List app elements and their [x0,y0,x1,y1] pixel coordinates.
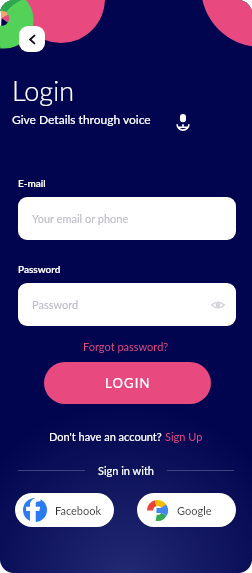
staticText: Password [32,298,79,311]
button[interactable]: Your email or phone [18,197,236,240]
button[interactable]: LOGIN [44,362,211,404]
button[interactable]: Sign Up [165,430,203,443]
button[interactable]: Show password [210,297,226,313]
staticText: Login [12,74,75,106]
staticText: LOGIN [105,375,151,391]
button[interactable]: Password [18,283,236,326]
staticText: Give Details through voice [12,112,151,126]
staticText: Don't have an account? [49,430,165,443]
button[interactable]: Back [19,26,45,52]
button[interactable]: Facebook [15,493,114,527]
staticText: Facebook [55,504,102,517]
button[interactable]: Voice input [172,110,194,132]
button[interactable]: Google [137,493,236,527]
staticText: Password [18,263,61,275]
staticText: E-mail [18,177,46,189]
staticText: Your email or phone [32,212,129,225]
button[interactable]: Forgot password? [77,338,175,355]
staticText: Google [177,504,212,517]
staticText: Sign in with [98,464,154,477]
